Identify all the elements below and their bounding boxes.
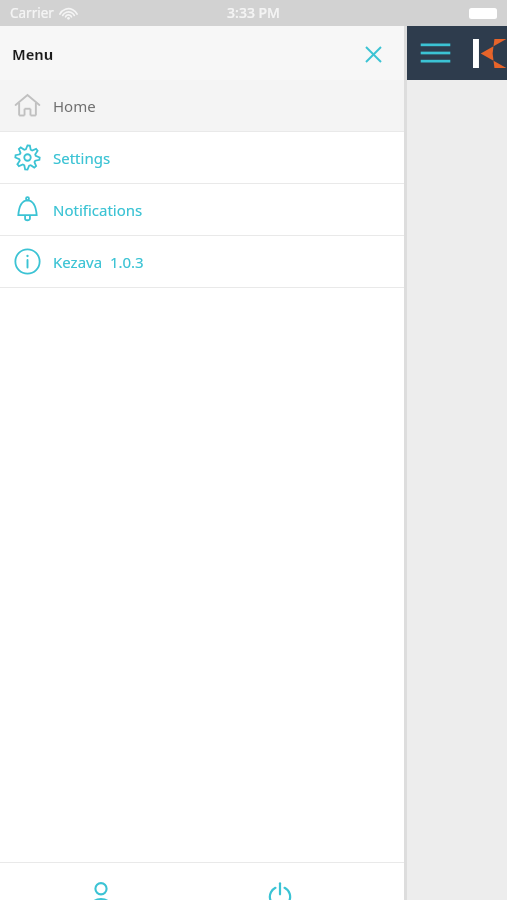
staticText: Settings — [53, 148, 111, 168]
staticText: Kezava 1.0.3 — [53, 252, 144, 272]
button[interactable]: Log out — [202, 863, 357, 900]
button[interactable]: Settings — [0, 132, 404, 183]
staticText: Carrier — [10, 4, 54, 22]
button[interactable]: Home — [0, 80, 404, 131]
staticText: Menu — [12, 44, 54, 64]
button[interactable]: Open navigation menu — [417, 41, 454, 65]
staticText: 3:33 PM — [0, 3, 507, 22]
button[interactable]: Notifications — [0, 184, 404, 235]
button[interactable]: Kezava 1.0.3 — [0, 236, 404, 287]
button[interactable]: Close menu — [357, 38, 389, 70]
staticText: Notifications — [53, 200, 143, 220]
staticText: Home — [53, 96, 96, 116]
button[interactable]: Account — [0, 863, 202, 900]
